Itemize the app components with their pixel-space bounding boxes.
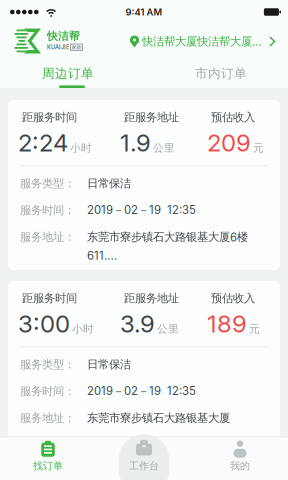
staticText: 小时: [70, 141, 92, 155]
staticText: 距服务时间: [22, 291, 77, 305]
staticText: 快洁帮大厦快洁帮大厦…: [142, 34, 262, 49]
staticText: 周边订单: [42, 65, 94, 81]
staticText: 日常保洁: [87, 357, 131, 372]
staticText: 元: [253, 141, 264, 155]
button[interactable]: 快洁帮大厦快洁帮大厦…: [130, 31, 288, 49]
staticText: 服务地址：: [20, 411, 75, 425]
button[interactable]: 市内订单: [144, 58, 288, 88]
staticText: 市内订单: [195, 65, 247, 81]
staticText: 1.9: [120, 128, 151, 157]
staticText: 预估收入: [211, 110, 255, 124]
staticText: 189: [207, 309, 247, 338]
staticText: 2:24: [18, 128, 68, 157]
staticText: 日常保洁: [87, 176, 131, 191]
staticText: 找订单: [33, 460, 63, 472]
staticText: 预估收入: [211, 291, 255, 305]
staticText: 距服务时间: [22, 110, 77, 124]
staticText: 3.9: [120, 309, 155, 338]
staticText: KUAIJIE: [47, 44, 69, 51]
staticText: 家政: [71, 44, 81, 50]
staticText: 611….: [87, 249, 117, 262]
button[interactable]: 工作台: [96, 436, 192, 479]
staticText: 服务地址：: [20, 230, 75, 244]
staticText: 服务时间：: [20, 384, 75, 398]
button[interactable]: 周边订单: [0, 58, 144, 88]
staticText: 小时: [72, 322, 94, 336]
staticText: 距服务地址: [124, 110, 179, 124]
staticText: 距服务地址: [124, 291, 179, 305]
staticText: 东莞市寮步镇石大路银基大厦6楼: [87, 230, 248, 244]
button[interactable]: 找订单: [0, 436, 96, 479]
staticText: 东莞市寮步镇石大路银基大厦: [87, 411, 230, 425]
button[interactable]: 距服务时间: [8, 281, 280, 451]
staticText: 元: [249, 322, 260, 336]
staticText: 我的: [230, 460, 250, 472]
staticText: 9:41 AM: [125, 6, 162, 18]
staticText: 3:00: [18, 309, 70, 338]
staticText: 服务类型：: [20, 176, 75, 191]
staticText: 快洁帮: [47, 29, 80, 43]
staticText: 服务类型：: [20, 357, 75, 372]
staticText: 服务时间：: [20, 203, 75, 217]
staticText: 工作台: [129, 460, 159, 472]
staticText: 公里: [153, 141, 175, 155]
staticText: 公里: [157, 322, 179, 336]
staticText: 209: [207, 128, 251, 157]
button[interactable]: 我的: [192, 436, 288, 479]
button[interactable]: 距服务时间: [8, 100, 280, 270]
staticText: 2019－02－19 12:35: [87, 384, 196, 398]
staticText: 2019－02－19 12:35: [87, 203, 196, 217]
